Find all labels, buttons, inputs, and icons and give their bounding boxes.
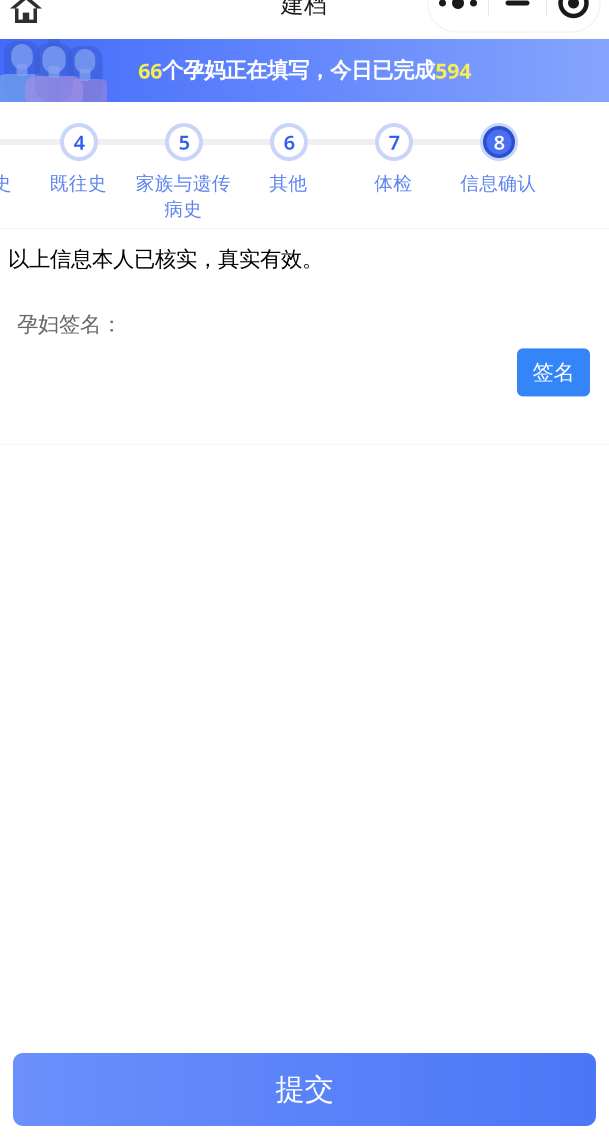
button[interactable]: 签名 bbox=[517, 348, 590, 396]
staticText: 孕妇签名： bbox=[17, 311, 122, 337]
staticText: 8 bbox=[493, 129, 504, 155]
staticText: 提交 bbox=[275, 1071, 333, 1107]
staticText: 7 bbox=[388, 129, 399, 155]
staticText: 6 bbox=[283, 129, 294, 155]
staticText: 以上信息本人已核实，真实有效。 bbox=[8, 246, 323, 272]
staticText: 594 bbox=[435, 56, 471, 85]
staticText: 孕产史 bbox=[0, 172, 11, 195]
staticText: 5 bbox=[178, 129, 189, 155]
staticText: 66 bbox=[138, 56, 162, 85]
staticText: 信息确认 bbox=[460, 172, 536, 195]
button[interactable]: More options bbox=[428, 0, 600, 32]
staticText: 个孕妈正在填写，今日已完成 bbox=[162, 57, 435, 84]
staticText: 既往史 bbox=[49, 172, 106, 195]
staticText: 4 bbox=[73, 129, 84, 155]
staticText: 家族与遗传病史 bbox=[135, 172, 230, 221]
staticText: 建档 bbox=[281, 0, 327, 19]
staticText: 其他 bbox=[269, 172, 307, 195]
button[interactable]: Home bbox=[10, 0, 42, 23]
staticText: 体检 bbox=[374, 172, 412, 195]
staticText: 签名 bbox=[532, 359, 574, 385]
button[interactable]: 提交 bbox=[13, 1053, 596, 1126]
